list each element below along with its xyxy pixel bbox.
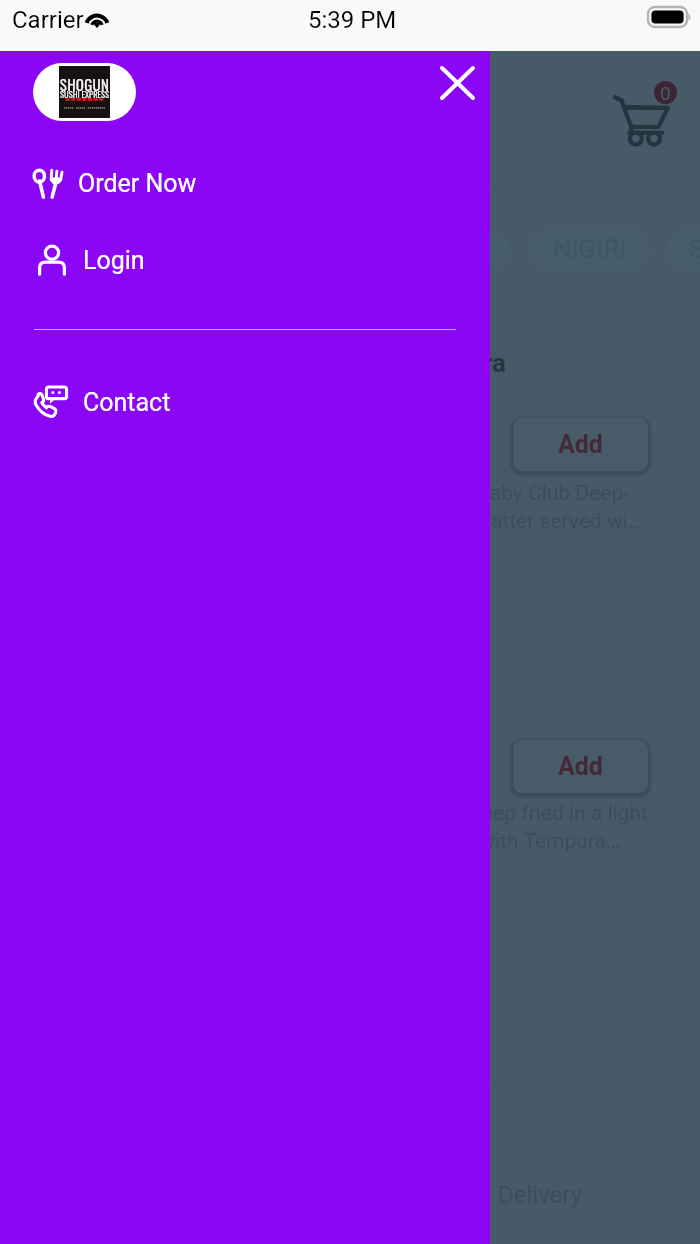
staticText: crispy batter with Tempura… — [0, 829, 620, 854]
staticText: Carrier — [12, 6, 84, 34]
button[interactable]: Contact — [0, 374, 490, 430]
staticText: Three pcs of Baby Club Deep- — [0, 481, 629, 506]
staticText: NIGIRI — [553, 234, 627, 264]
staticText: Delivery — [498, 1181, 583, 1209]
button[interactable]: Add — [513, 740, 648, 793]
button[interactable]: Shogun Sushi Express logo — [33, 63, 136, 121]
button[interactable]: MAKI — [401, 226, 510, 272]
staticText: SHOGUN — [59, 73, 110, 95]
button: Shogun Sushi Express logo — [0, 51, 490, 1244]
staticText: Login — [83, 246, 145, 275]
staticText: Order Now — [78, 169, 197, 198]
staticText: SUSHI EXPRESS — [59, 88, 110, 101]
staticText: 5:39 PM — [308, 6, 397, 34]
button[interactable]: Order Now — [0, 155, 490, 211]
button[interactable]: Login — [0, 232, 490, 288]
staticText: Vegetables deep fried in a light — [0, 801, 648, 826]
staticText: fried in a light batter served wi… — [0, 509, 642, 534]
staticText: Add — [558, 752, 603, 781]
button[interactable]: Close menu — [425, 51, 489, 115]
staticText: Ebi Tempura — [0, 348, 506, 378]
button[interactable]: Add — [513, 418, 648, 471]
button[interactable]: Cart — [600, 70, 686, 156]
staticText: SASHIMI — [689, 234, 700, 264]
staticText: 0 — [660, 82, 671, 104]
staticText: Contact — [83, 388, 171, 417]
staticText: Add — [558, 430, 603, 459]
